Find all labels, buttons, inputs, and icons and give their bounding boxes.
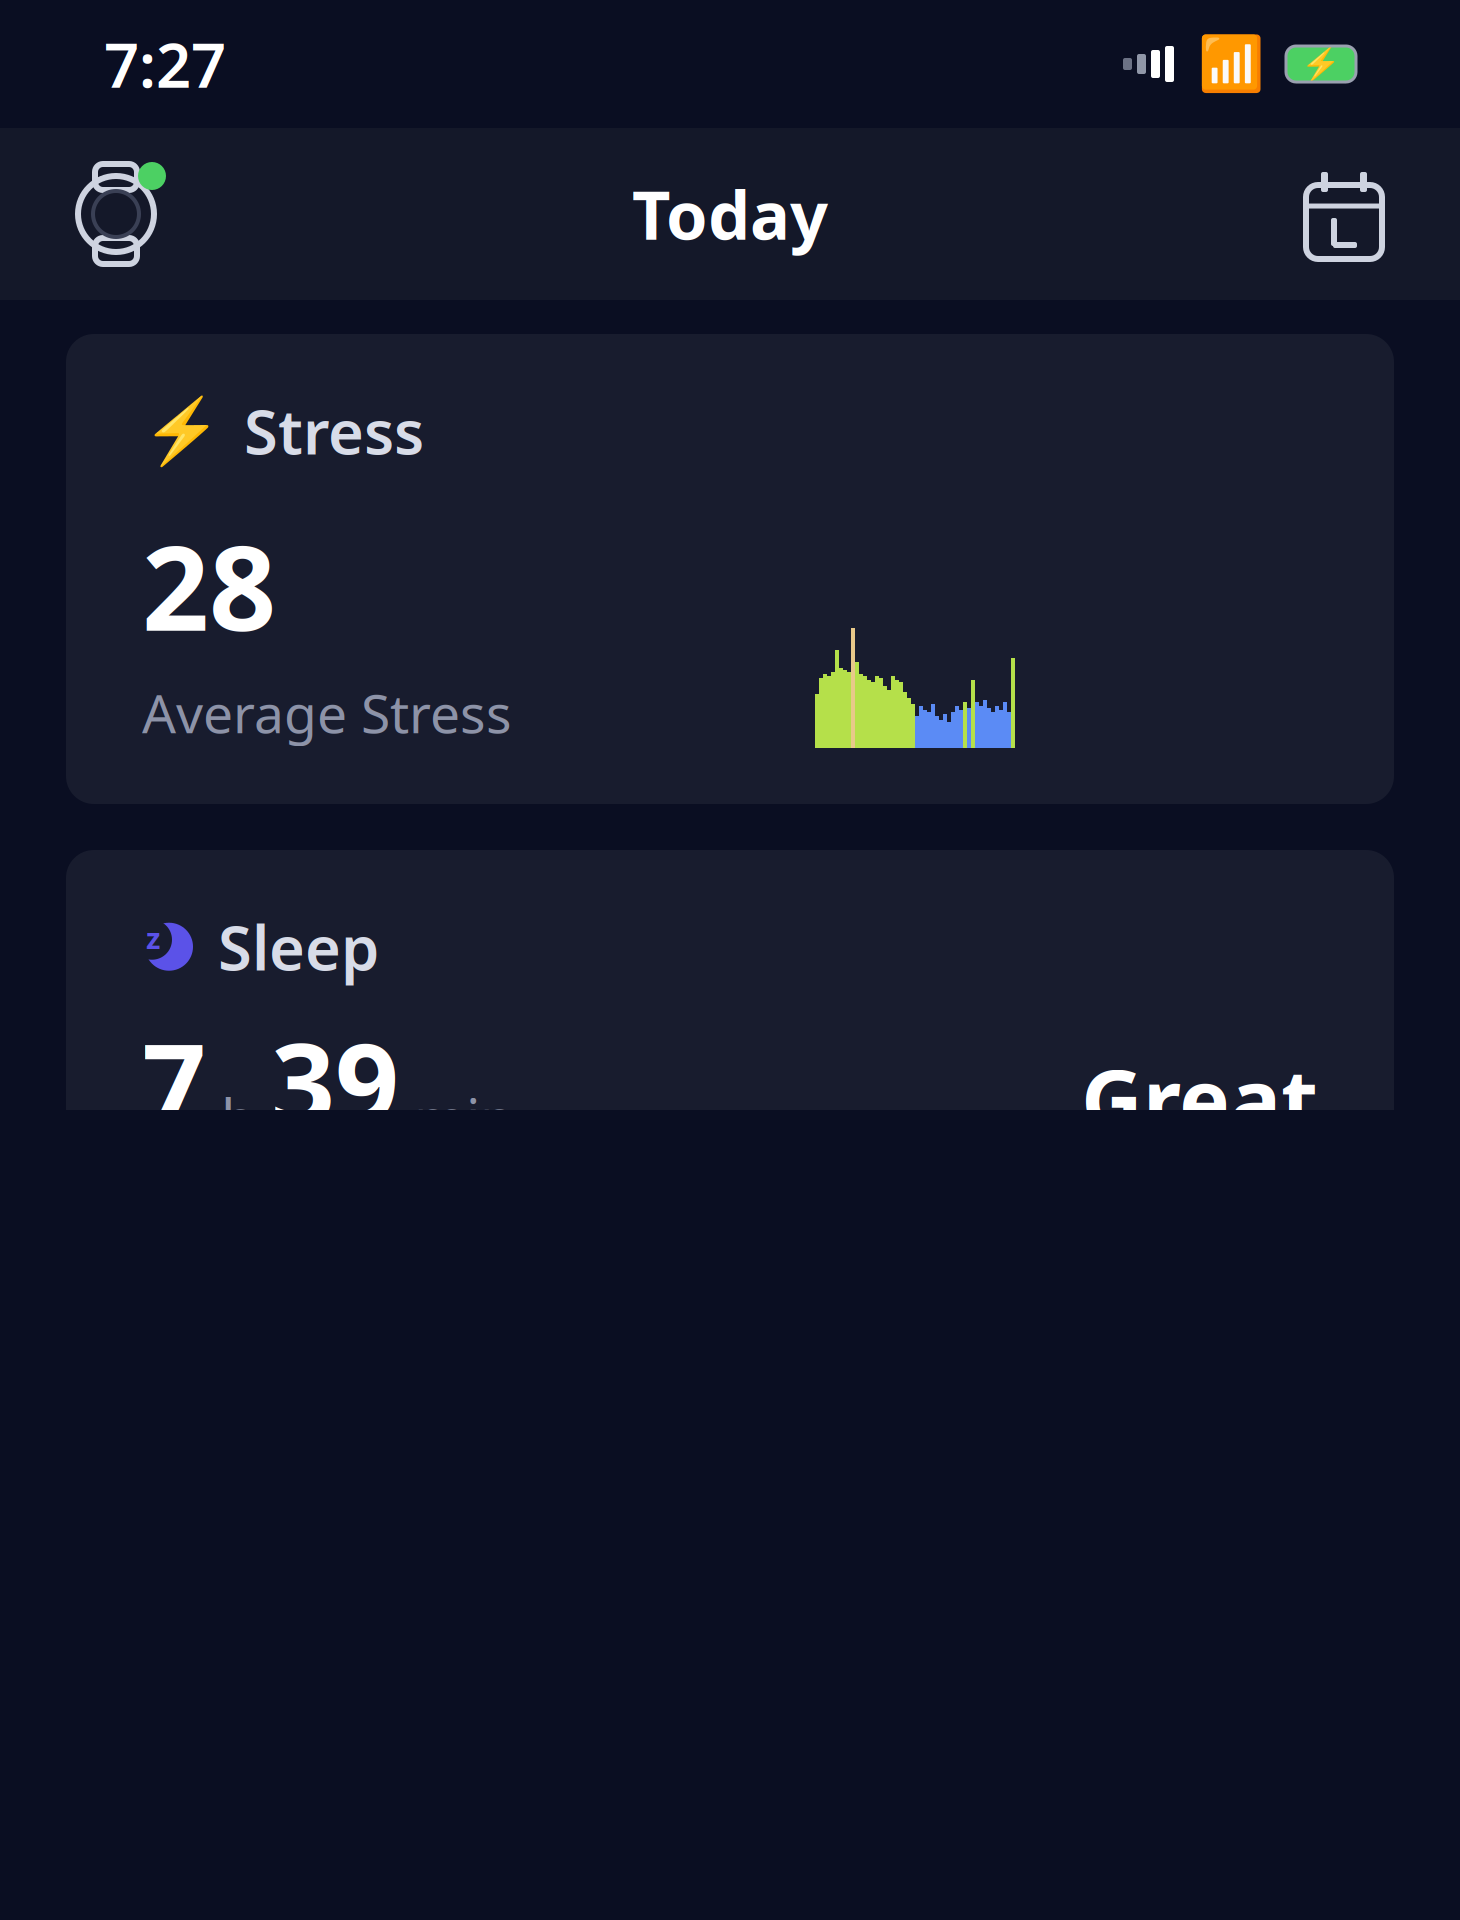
- button[interactable]: ⚡: [66, 334, 1394, 804]
- staticText: 📶: [1198, 33, 1264, 94]
- button[interactable]: Calendar: [1284, 154, 1404, 274]
- staticText: 7:27: [104, 23, 226, 105]
- button[interactable]: z: [66, 850, 1394, 1356]
- staticText: Today: [632, 170, 828, 258]
- staticText: ⚡: [1301, 46, 1341, 82]
- staticText: Average Stress: [142, 677, 512, 748]
- staticText: ⚡: [142, 394, 222, 467]
- staticText: Great: [1081, 1042, 1318, 1155]
- staticText: z: [146, 918, 160, 957]
- staticText: 7: [142, 1006, 206, 1155]
- staticText: Stress: [244, 390, 424, 471]
- staticText: Sleep: [218, 906, 379, 987]
- staticText: 28: [142, 507, 276, 663]
- button[interactable]: Connected watch: [56, 154, 176, 274]
- staticText: h: [206, 1081, 271, 1155]
- staticText: min: [399, 1081, 515, 1155]
- staticText: 39: [271, 1006, 399, 1155]
